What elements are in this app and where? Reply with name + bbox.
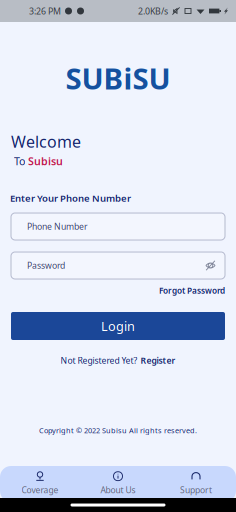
staticText: SUBiSU [65, 58, 170, 98]
staticText: Login [101, 317, 135, 335]
staticText: Forgot Password [159, 285, 225, 296]
staticText: Welcome [11, 131, 81, 152]
staticText: 3:26 PM [29, 5, 61, 17]
button[interactable]: Login [11, 312, 225, 340]
staticText: Subisu [28, 154, 63, 168]
button[interactable]: Forgot Password [153, 285, 225, 296]
button[interactable]: Not Registered Yet? [11, 355, 225, 366]
staticText: Register [140, 355, 175, 366]
staticText: Copyright © 2022 Subisu All rights reser… [39, 425, 197, 435]
button[interactable]: Support [157, 466, 235, 502]
button[interactable]: Coverage [1, 466, 79, 502]
staticText: Not Registered Yet? [60, 355, 137, 366]
staticText: To [14, 154, 25, 168]
staticText: Coverage [21, 484, 58, 496]
staticText: Support [180, 484, 212, 496]
staticText: Password [27, 260, 65, 271]
button[interactable]: About Us [79, 466, 157, 502]
staticText: About Us [100, 484, 135, 496]
staticText: Enter Your Phone Number [10, 191, 131, 205]
staticText: Phone Number [27, 221, 88, 232]
staticText: 2.0KB/s [138, 5, 168, 17]
